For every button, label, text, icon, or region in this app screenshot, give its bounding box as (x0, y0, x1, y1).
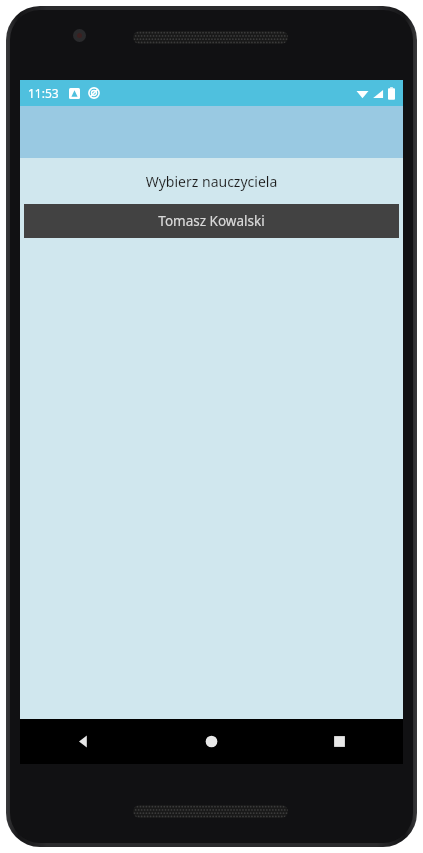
button[interactable]: Home (147, 719, 275, 764)
button[interactable]: Back (20, 719, 147, 764)
staticText: 11:53 (28, 85, 59, 101)
staticText: Tomasz Kowalski (158, 212, 265, 230)
button[interactable]: Recent apps (275, 719, 403, 764)
staticText: Wybierz nauczyciela (20, 172, 403, 191)
button[interactable]: Tomasz Kowalski (24, 204, 399, 238)
